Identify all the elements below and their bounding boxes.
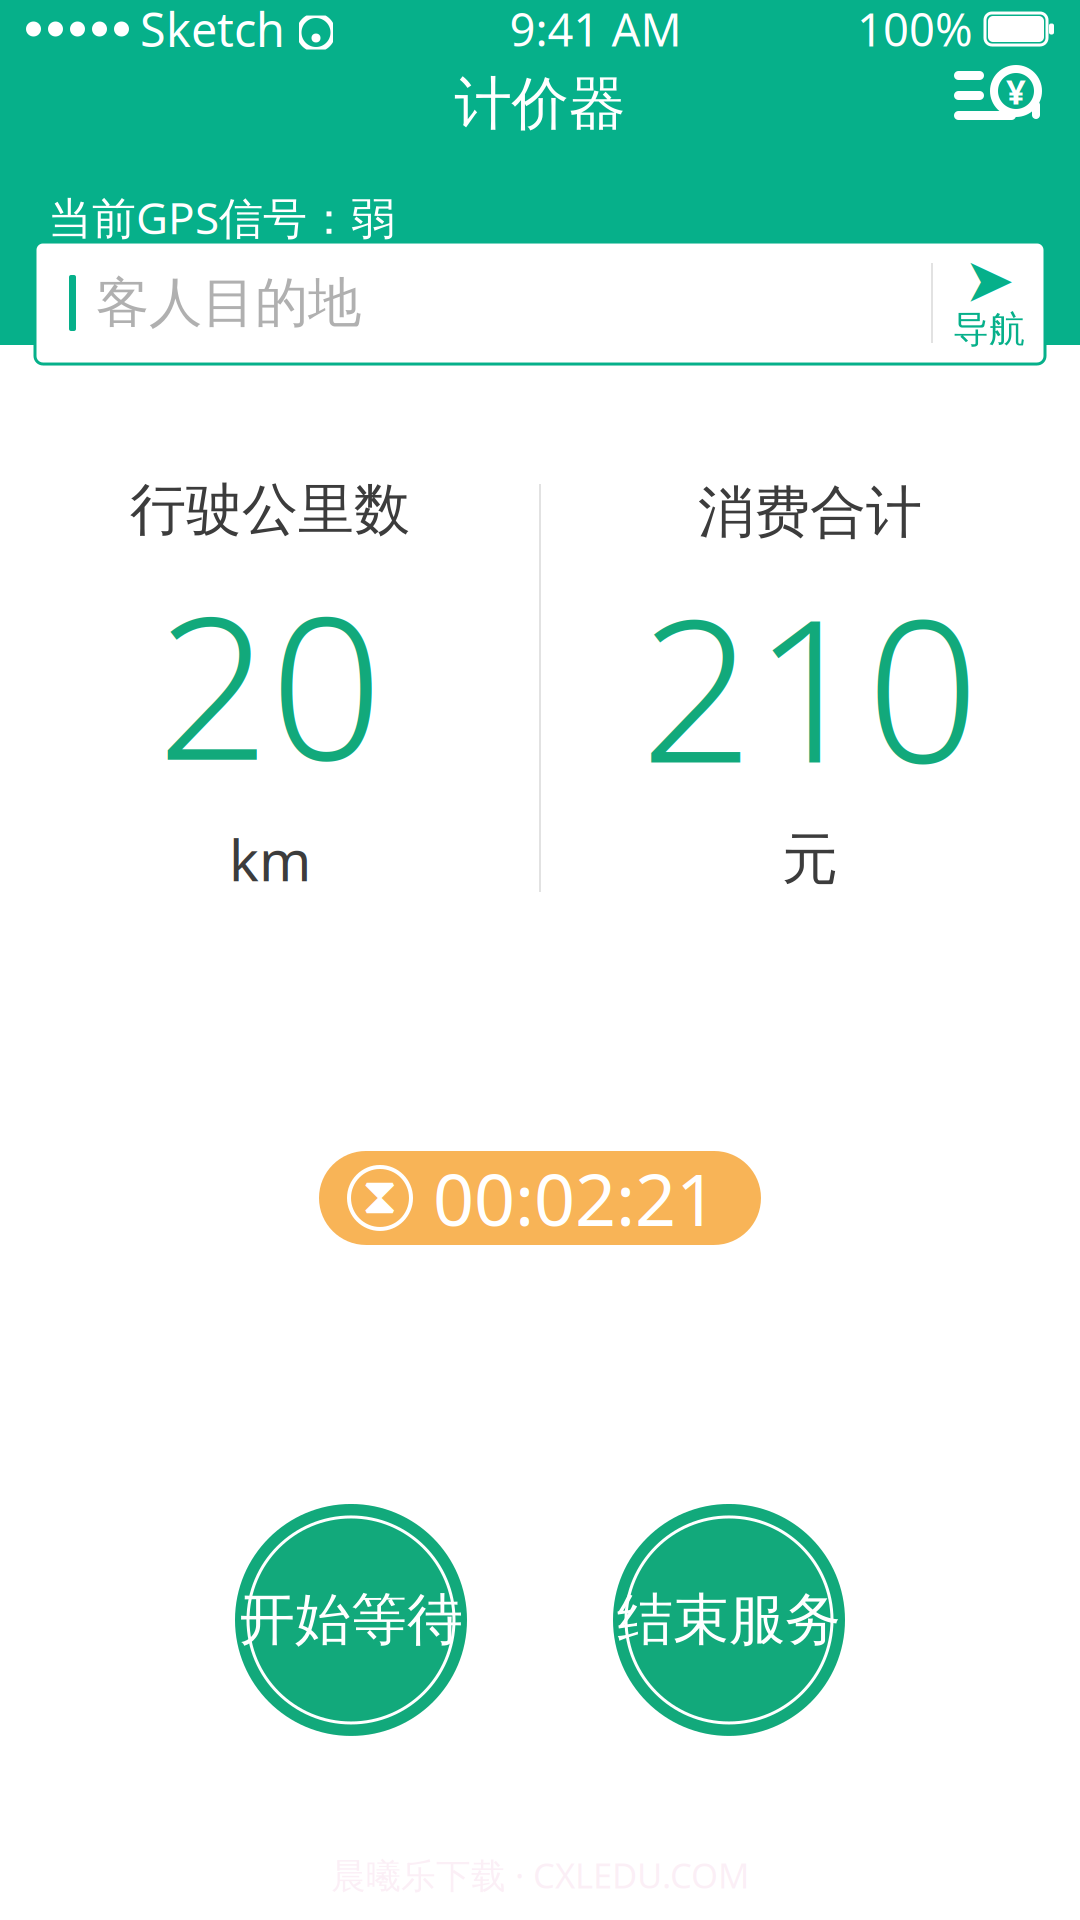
staticText: 计价器 bbox=[454, 69, 625, 139]
staticText: 客人目的地 bbox=[96, 270, 361, 336]
staticText: 当前GPS信号：弱 bbox=[48, 188, 395, 246]
button[interactable]: 开始等待 bbox=[235, 1504, 467, 1736]
staticText: km bbox=[229, 822, 311, 897]
staticText: 导航 bbox=[953, 307, 1025, 352]
staticText: 210 bbox=[640, 555, 979, 817]
staticText: 元 bbox=[782, 825, 838, 894]
staticText: 行驶公里数 bbox=[130, 475, 410, 544]
staticText: ➤ bbox=[963, 246, 1014, 315]
staticText: 00:02:21 bbox=[433, 1150, 717, 1246]
staticText: Sketch bbox=[140, 0, 285, 60]
staticText: 100% bbox=[857, 0, 973, 59]
button[interactable]: 客人目的地 bbox=[0, 242, 1080, 364]
staticText: ¥ bbox=[1006, 68, 1026, 114]
staticText: 消费合计 bbox=[698, 478, 922, 547]
staticText: 晨曦乐下载 · CXLEDU.COM bbox=[331, 1852, 749, 1898]
staticText: 结束服务 bbox=[617, 1586, 841, 1654]
staticText: 20 bbox=[157, 552, 383, 814]
button[interactable]: 结束服务 bbox=[613, 1504, 845, 1736]
button[interactable]: 价格表 bbox=[952, 59, 1052, 149]
staticText: 9:41 AM bbox=[509, 0, 681, 59]
staticText: ⧗ bbox=[362, 1173, 398, 1223]
staticText: 开始等待 bbox=[239, 1586, 463, 1654]
